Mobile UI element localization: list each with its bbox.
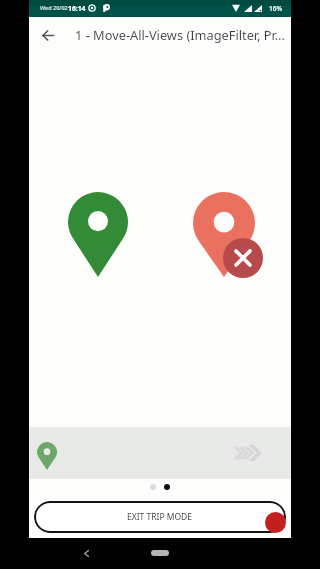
button[interactable]: Back (30, 17, 66, 53)
button[interactable] (29, 427, 291, 479)
staticText: 16% (269, 4, 283, 13)
staticText: 16:14 (68, 4, 86, 13)
staticText: 1 - Move-All-Views (ImageFilter, Pr… (75, 26, 285, 43)
button[interactable]: Home (151, 550, 169, 556)
staticText: Wed 20/02 (40, 4, 68, 11)
button[interactable]: Record trip (265, 512, 286, 533)
button[interactable]: Back (74, 541, 98, 565)
button[interactable]: EXIT TRIP MODE (34, 501, 286, 533)
staticText: EXIT TRIP MODE (127, 511, 193, 523)
button[interactable]: Cancel stop (223, 238, 263, 278)
